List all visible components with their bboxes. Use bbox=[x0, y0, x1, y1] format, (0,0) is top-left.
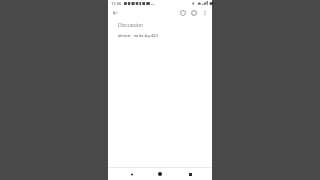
button[interactable]: More options bbox=[200, 8, 210, 18]
button[interactable]: Back bbox=[124, 168, 138, 180]
staticText: 11:06 bbox=[111, 1, 122, 6]
staticText: almost · write-bg-420 bbox=[118, 33, 158, 38]
button[interactable]: Back bbox=[110, 8, 120, 18]
button[interactable]: Recent apps bbox=[183, 168, 197, 180]
button[interactable]: Tabs bbox=[189, 8, 199, 18]
button[interactable]: Security bbox=[178, 8, 188, 18]
staticText: Discussion bbox=[118, 22, 144, 29]
button[interactable]: Home bbox=[153, 168, 167, 180]
